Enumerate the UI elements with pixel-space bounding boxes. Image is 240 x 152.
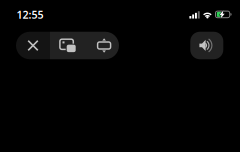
button[interactable]: Picture in Picture [50,32,84,59]
button[interactable]: Volume [190,32,223,59]
button[interactable]: Close [16,32,50,59]
staticText: 12:55 [16,7,43,22]
button[interactable]: Aspect Ratio [84,32,119,59]
